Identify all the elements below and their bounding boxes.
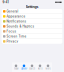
button[interactable]: Appearance: [2, 14, 62, 19]
staticText: 9:41: [2, 0, 8, 4]
staticText: Alerts: [37, 67, 42, 70]
button[interactable]: General: [2, 9, 62, 14]
staticText: Privacy: [7, 40, 19, 43]
button[interactable]: Alerts: [36, 62, 44, 72]
staticText: Library: [21, 67, 27, 70]
button[interactable]: Search: [28, 62, 36, 72]
staticText: Settings: [25, 5, 38, 9]
staticText: General: [7, 10, 19, 13]
button[interactable]: More: [44, 62, 52, 72]
button[interactable]: Library: [20, 62, 28, 72]
button[interactable]: Screen Time: [2, 34, 62, 39]
staticText: Search: [29, 67, 35, 70]
button[interactable]: Focus: [2, 29, 62, 34]
staticText: Appearance: [7, 15, 26, 18]
staticText: More: [45, 67, 50, 70]
staticText: Notifications: [7, 20, 27, 23]
button[interactable]: Notifications: [2, 19, 62, 24]
button[interactable]: Today: [12, 62, 20, 72]
staticText: Focus: [7, 30, 17, 33]
staticText: Sounds & Haptics: [7, 25, 35, 28]
button[interactable]: Sounds & Haptics: [2, 24, 62, 29]
staticText: Today: [13, 67, 18, 70]
staticText: Screen Time: [7, 35, 27, 38]
button[interactable]: Privacy: [2, 39, 62, 44]
